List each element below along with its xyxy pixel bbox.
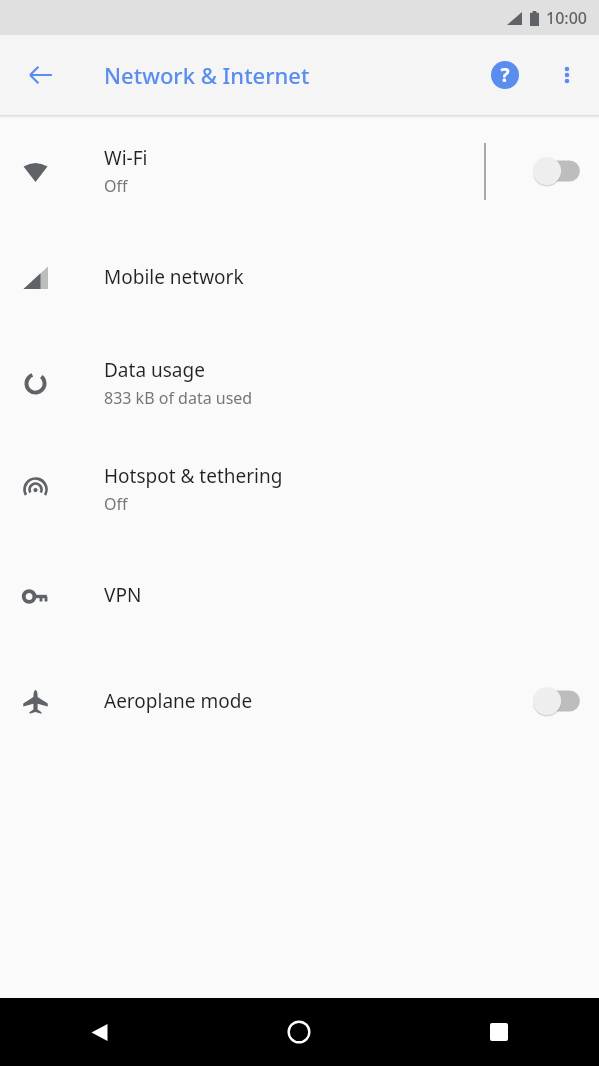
staticText: ? <box>500 62 510 88</box>
staticText: Network & Internet <box>104 60 310 90</box>
staticText: Mobile network <box>104 264 244 290</box>
staticText: Off <box>104 175 128 197</box>
button[interactable]: Recent apps <box>399 998 599 1066</box>
staticText: Aeroplane mode <box>104 688 253 714</box>
button[interactable]: More options <box>543 51 591 99</box>
staticText: 10:00 <box>546 7 587 29</box>
staticText: Off <box>104 493 128 515</box>
button[interactable]: Aeroplane mode <box>0 648 599 754</box>
staticText: VPN <box>104 582 142 608</box>
staticText: Data usage <box>104 357 205 383</box>
staticText: Hotspot & tethering <box>104 463 283 489</box>
button[interactable]: Hotspot & tethering <box>0 436 599 542</box>
staticText: 833 kB of data used <box>104 387 253 409</box>
button[interactable]: Home <box>199 998 399 1066</box>
button[interactable]: Wi-Fi toggle <box>527 147 587 195</box>
staticText: Wi-Fi <box>104 145 148 171</box>
button[interactable]: Back <box>14 48 68 102</box>
button[interactable]: Data usage <box>0 330 599 436</box>
button[interactable]: Mobile network <box>0 224 599 330</box>
button[interactable]: Help <box>481 51 529 99</box>
button[interactable]: VPN <box>0 542 599 648</box>
button[interactable]: Wi-Fi <box>0 118 599 224</box>
button[interactable]: Aeroplane mode toggle <box>527 677 587 725</box>
button[interactable]: Back <box>0 998 199 1066</box>
